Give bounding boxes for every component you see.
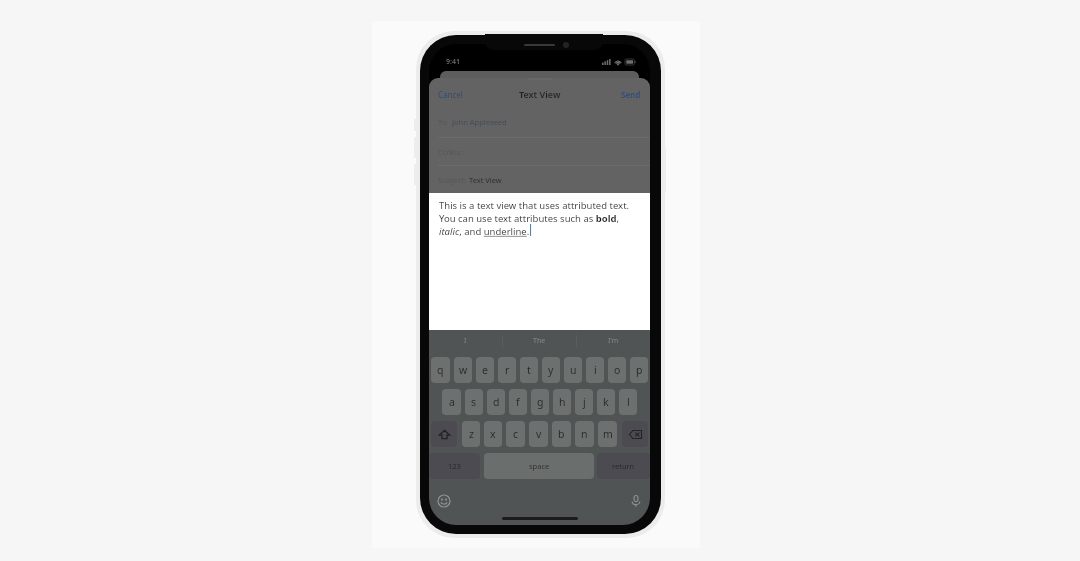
staticText: g xyxy=(537,395,544,409)
button[interactable]: q xyxy=(431,357,450,383)
button[interactable]: h xyxy=(553,389,571,415)
button[interactable]: f xyxy=(509,389,527,415)
button[interactable]: Emoji keyboard xyxy=(437,494,451,508)
button[interactable]: 123 xyxy=(429,453,480,479)
staticText: I'm xyxy=(608,336,619,346)
button[interactable]: k xyxy=(597,389,615,415)
staticText: space xyxy=(529,461,550,471)
button[interactable]: c xyxy=(506,421,525,447)
button[interactable]: y xyxy=(542,357,560,383)
staticText: f xyxy=(516,395,520,409)
button[interactable]: z xyxy=(462,421,480,447)
staticText: To: xyxy=(438,117,449,127)
staticText: w xyxy=(459,363,468,377)
button[interactable]: a xyxy=(442,389,461,415)
button[interactable]: j xyxy=(575,389,593,415)
button[interactable]: w xyxy=(454,357,472,383)
staticText: 123 xyxy=(448,461,461,471)
button[interactable]: n xyxy=(575,421,594,447)
button[interactable]: The xyxy=(503,330,576,352)
staticText: b xyxy=(558,427,565,441)
button[interactable]: v xyxy=(529,421,548,447)
staticText: e xyxy=(482,363,488,377)
staticText: n xyxy=(581,427,588,441)
staticText: This is a text view that uses attributed… xyxy=(439,199,636,238)
staticText: I xyxy=(464,336,467,346)
button[interactable]: u xyxy=(564,357,582,383)
button[interactable]: This is a text view that uses attributed… xyxy=(429,193,650,330)
staticText: u xyxy=(570,363,577,377)
button[interactable]: l xyxy=(619,389,637,415)
staticText: d xyxy=(493,395,500,409)
button[interactable]: b xyxy=(552,421,571,447)
button[interactable]: o xyxy=(608,357,626,383)
staticText: x xyxy=(490,427,496,441)
button[interactable]: Send xyxy=(621,86,650,103)
staticText: h xyxy=(559,395,566,409)
staticText: i xyxy=(594,363,597,377)
button[interactable]: p xyxy=(630,357,648,383)
button[interactable]: Dictation xyxy=(630,495,642,507)
button[interactable]: I'm xyxy=(577,330,650,352)
staticText: Text View xyxy=(519,88,561,100)
button[interactable]: e xyxy=(476,357,494,383)
button[interactable]: Subject: xyxy=(429,165,650,193)
staticText: r xyxy=(505,363,510,377)
staticText: o xyxy=(614,363,621,377)
staticText: 9:41 xyxy=(446,57,460,67)
staticText: Text View xyxy=(469,175,502,185)
staticText: a xyxy=(449,395,455,409)
staticText: Cc/Bcc: xyxy=(438,147,464,157)
button[interactable]: space xyxy=(484,453,594,479)
staticText: s xyxy=(471,395,477,409)
button[interactable]: i xyxy=(586,357,604,383)
staticText: m xyxy=(603,427,613,441)
staticText: c xyxy=(513,427,519,441)
button[interactable]: m xyxy=(598,421,617,447)
button[interactable]: g xyxy=(531,389,549,415)
button[interactable]: r xyxy=(498,357,516,383)
staticText: return xyxy=(612,461,635,471)
button[interactable]: return xyxy=(597,453,650,479)
button[interactable]: d xyxy=(487,389,505,415)
staticText: j xyxy=(583,395,586,409)
staticText: z xyxy=(469,427,474,441)
button[interactable]: t xyxy=(520,357,538,383)
button[interactable]: Backspace xyxy=(622,421,648,447)
button[interactable]: Cancel xyxy=(429,86,463,103)
staticText: q xyxy=(437,363,444,377)
button[interactable]: Shift xyxy=(431,421,457,447)
staticText: k xyxy=(603,395,609,409)
staticText: p xyxy=(636,363,643,377)
staticText: John Appleseed xyxy=(452,117,507,127)
button[interactable]: x xyxy=(484,421,502,447)
staticText: l xyxy=(627,395,630,409)
staticText: Subject: xyxy=(438,175,466,185)
staticText: y xyxy=(548,363,554,377)
staticText: t xyxy=(527,363,531,377)
staticText: v xyxy=(536,427,542,441)
staticText: The xyxy=(533,336,546,346)
button[interactable]: s xyxy=(465,389,483,415)
